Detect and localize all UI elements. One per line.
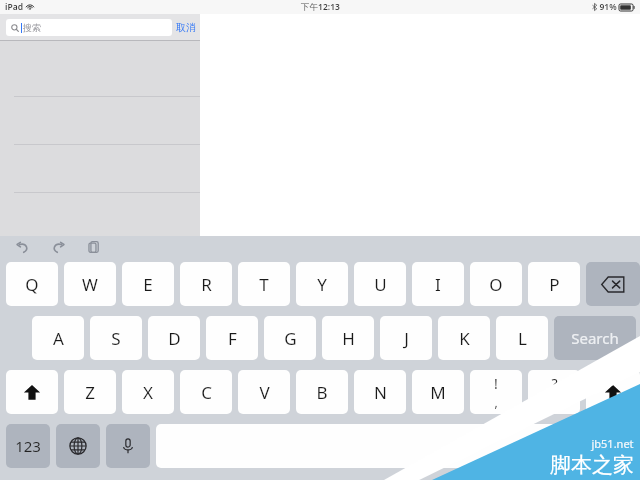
button[interactable]: H bbox=[322, 316, 374, 360]
staticText: D bbox=[168, 327, 181, 350]
button[interactable]: Search bbox=[554, 316, 636, 360]
staticText: P bbox=[549, 273, 560, 296]
staticText: H bbox=[342, 327, 355, 350]
button[interactable]: D bbox=[148, 316, 200, 360]
staticText: Y bbox=[317, 273, 327, 296]
staticText: M bbox=[430, 381, 446, 404]
staticText: X bbox=[143, 381, 153, 404]
staticText: K bbox=[459, 327, 470, 350]
staticText: Search bbox=[571, 328, 619, 348]
staticText: 下午12:13 bbox=[301, 1, 340, 13]
button[interactable]: I bbox=[412, 262, 464, 306]
button[interactable]: O bbox=[470, 262, 522, 306]
button[interactable]: E bbox=[122, 262, 174, 306]
button[interactable]: Key bbox=[586, 262, 640, 306]
staticText: I bbox=[435, 273, 441, 296]
staticText: 取消 bbox=[176, 21, 196, 34]
button[interactable]: Y bbox=[296, 262, 348, 306]
staticText: A bbox=[53, 327, 64, 350]
staticText: B bbox=[316, 381, 328, 404]
button[interactable]: Redo bbox=[48, 237, 68, 257]
staticText: V bbox=[259, 381, 270, 404]
staticText: F bbox=[228, 327, 237, 350]
button[interactable]: V bbox=[238, 370, 290, 414]
staticText: 123 bbox=[15, 436, 41, 456]
button[interactable]: S bbox=[90, 316, 142, 360]
button[interactable]: Undo bbox=[12, 237, 32, 257]
staticText: L bbox=[518, 327, 527, 350]
button[interactable]: R bbox=[180, 262, 232, 306]
staticText: Z bbox=[85, 381, 95, 404]
staticText: 91% bbox=[599, 1, 617, 13]
button[interactable]: G bbox=[264, 316, 316, 360]
button[interactable]: F bbox=[206, 316, 258, 360]
button[interactable]: L bbox=[496, 316, 548, 360]
staticText: N bbox=[374, 381, 387, 404]
button[interactable]: U bbox=[354, 262, 406, 306]
button[interactable]: N bbox=[354, 370, 406, 414]
button[interactable]: ? bbox=[528, 370, 580, 414]
staticText: R bbox=[201, 273, 212, 296]
staticText: ? bbox=[551, 374, 558, 393]
button[interactable]: W bbox=[64, 262, 116, 306]
button[interactable]: Key bbox=[56, 424, 100, 468]
button[interactable]: Space bbox=[156, 424, 634, 468]
button[interactable]: Q bbox=[6, 262, 58, 306]
staticText: 搜索 bbox=[23, 22, 41, 33]
button[interactable]: P bbox=[528, 262, 580, 306]
staticText: C bbox=[201, 381, 212, 404]
button[interactable]: B bbox=[296, 370, 348, 414]
button[interactable]: 搜索 bbox=[6, 19, 172, 36]
button[interactable]: A bbox=[32, 316, 84, 360]
staticText: jb51.net bbox=[591, 436, 634, 451]
staticText: ! bbox=[494, 374, 498, 393]
button[interactable]: J bbox=[380, 316, 432, 360]
staticText: T bbox=[259, 273, 269, 296]
staticText: 脚本之家 bbox=[550, 452, 634, 478]
staticText: U bbox=[374, 273, 387, 296]
button[interactable]: Key bbox=[106, 424, 150, 468]
button[interactable]: ! bbox=[470, 370, 522, 414]
staticText: iPad bbox=[5, 1, 23, 13]
staticText: , bbox=[494, 394, 498, 410]
button[interactable]: 123 bbox=[6, 424, 50, 468]
button[interactable]: Shift bbox=[586, 370, 640, 414]
staticText: G bbox=[284, 327, 297, 350]
button[interactable]: Paste bbox=[84, 237, 104, 257]
staticText: E bbox=[143, 273, 153, 296]
staticText: O bbox=[489, 273, 503, 296]
staticText: S bbox=[111, 327, 121, 350]
staticText: J bbox=[404, 327, 409, 350]
button[interactable]: T bbox=[238, 262, 290, 306]
button[interactable]: Shift bbox=[6, 370, 58, 414]
button[interactable]: 取消 bbox=[176, 21, 196, 34]
button[interactable]: K bbox=[438, 316, 490, 360]
button[interactable]: M bbox=[412, 370, 464, 414]
button[interactable]: Z bbox=[64, 370, 116, 414]
staticText: Q bbox=[25, 273, 39, 296]
staticText: W bbox=[82, 273, 98, 296]
button[interactable]: X bbox=[122, 370, 174, 414]
button[interactable]: C bbox=[180, 370, 232, 414]
